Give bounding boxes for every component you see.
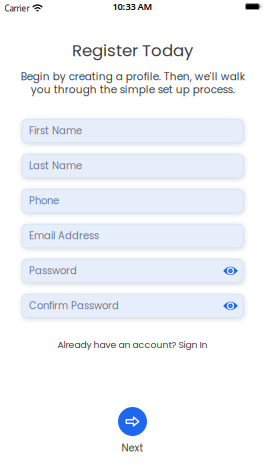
- button[interactable]: First Name: [21, 119, 243, 143]
- button[interactable]: Confirm Password: [21, 294, 243, 318]
- staticText: First Name: [29, 124, 82, 138]
- button[interactable]: Show password: [223, 300, 238, 312]
- button[interactable]: Show password: [223, 265, 238, 277]
- staticText: Begin by creating a profile. Then, we'll…: [20, 69, 244, 97]
- staticText: Carrier: [4, 3, 29, 14]
- button[interactable]: Email Address: [21, 224, 243, 248]
- staticText: Register Today: [72, 39, 193, 62]
- staticText: Email Address: [29, 229, 99, 243]
- button[interactable]: Password: [21, 259, 243, 283]
- staticText: Already have an account?: [57, 338, 178, 351]
- staticText: Sign In: [178, 338, 207, 351]
- staticText: Password: [29, 264, 77, 278]
- staticText: Phone: [29, 194, 59, 208]
- staticText: Next: [121, 441, 143, 455]
- button[interactable]: Sign In: [178, 338, 207, 351]
- button[interactable]: Last Name: [21, 154, 243, 178]
- staticText: Last Name: [29, 159, 82, 173]
- button[interactable]: Phone: [21, 189, 243, 213]
- staticText: Confirm Password: [29, 299, 119, 313]
- staticText: 10:33 AM: [112, 0, 152, 13]
- button[interactable]: Next: [118, 407, 147, 455]
